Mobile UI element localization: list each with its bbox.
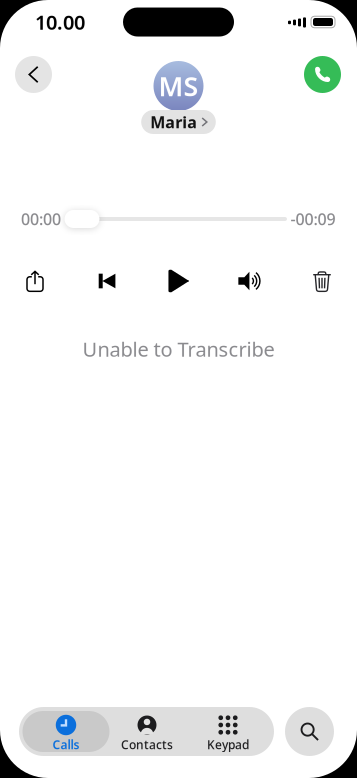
staticText: Contacts	[121, 736, 173, 752]
staticText: Keypad	[207, 736, 249, 752]
button[interactable]: Share	[13, 259, 57, 303]
button[interactable]: Keypad	[187, 707, 268, 756]
button[interactable]: Rewind	[85, 259, 129, 303]
staticText: Unable to Transcribe	[82, 336, 274, 362]
button[interactable]: Speaker	[228, 259, 272, 303]
staticText: 10.00	[35, 9, 85, 35]
button[interactable]: Calls	[25, 707, 106, 756]
button[interactable]: Delete	[300, 259, 344, 303]
button[interactable]: Call	[304, 56, 341, 93]
staticText: MS	[158, 68, 198, 104]
button[interactable]: Play	[156, 259, 200, 303]
button[interactable]: Back	[15, 56, 52, 93]
staticText: Calls	[52, 736, 79, 752]
button[interactable]: Maria	[141, 110, 216, 134]
staticText: Maria	[150, 111, 197, 133]
button[interactable]: Search	[285, 707, 334, 756]
staticText: -00:09	[290, 208, 335, 230]
button[interactable]: Contacts	[106, 707, 187, 756]
staticText: 00:00	[21, 208, 61, 230]
